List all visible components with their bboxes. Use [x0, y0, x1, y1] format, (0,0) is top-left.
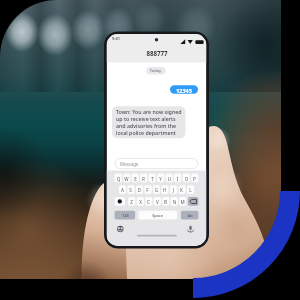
staticText: G	[153, 187, 160, 193]
staticText: J	[170, 187, 177, 193]
staticText: U	[166, 176, 173, 182]
staticText: 9:41	[112, 36, 300, 41]
staticText: R	[140, 176, 147, 182]
staticText: O	[183, 176, 190, 182]
staticText: Y	[157, 176, 164, 182]
staticText: Z	[128, 199, 135, 205]
staticText: B	[162, 199, 169, 205]
staticText: Go	[181, 213, 199, 218]
staticText: Today	[146, 68, 165, 73]
staticText: T	[149, 176, 156, 182]
staticText: E	[132, 176, 139, 182]
staticText: C	[145, 199, 152, 205]
staticText: D	[136, 187, 143, 193]
staticText: 123	[115, 213, 136, 218]
staticText: S	[127, 187, 134, 193]
staticText: M	[179, 199, 186, 205]
staticText: 12345	[170, 87, 198, 94]
staticText: N	[171, 199, 178, 205]
staticText: V	[154, 199, 161, 205]
staticText: A	[119, 187, 126, 193]
staticText: X	[137, 199, 144, 205]
staticText: L	[187, 187, 194, 193]
staticText: K	[178, 187, 185, 193]
staticText: H	[161, 187, 168, 193]
staticText: Town: You are now signed up to receive t…	[116, 108, 182, 136]
staticText: P	[191, 176, 198, 182]
staticText: Message	[120, 161, 300, 167]
staticText: 888777	[107, 49, 207, 57]
staticText: Q	[115, 176, 122, 182]
staticText: I	[174, 176, 181, 182]
staticText: W	[123, 176, 130, 182]
staticText: Space	[138, 213, 177, 218]
staticText: F	[144, 187, 151, 193]
